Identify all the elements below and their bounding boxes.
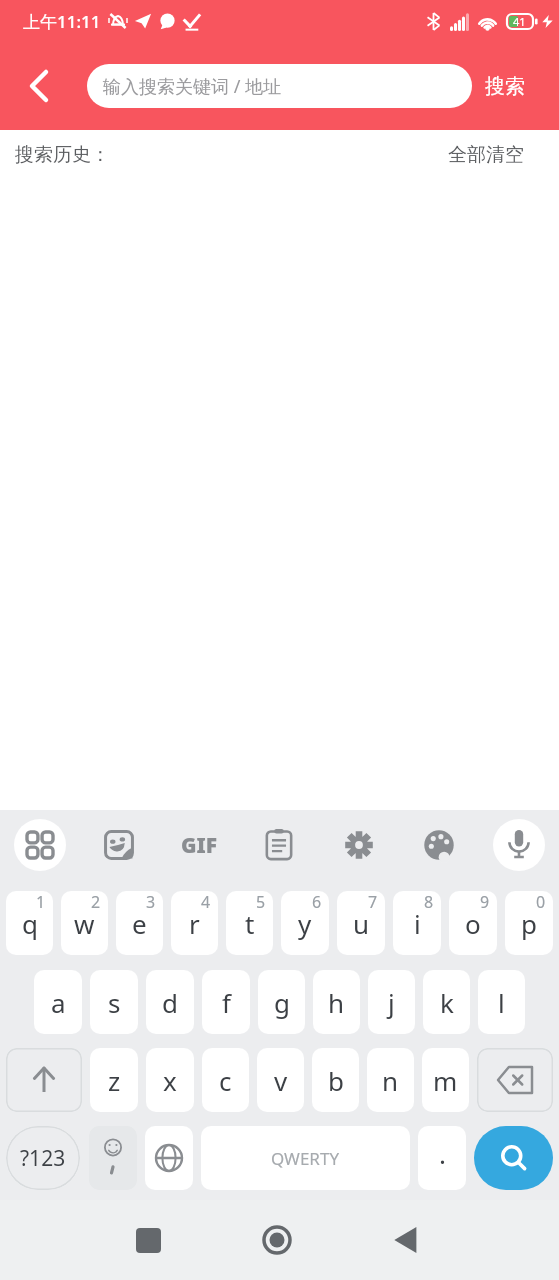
button[interactable]: [386, 1220, 426, 1260]
staticText: w: [74, 906, 95, 941]
button[interactable]: k: [423, 970, 470, 1034]
staticText: QWERTY: [271, 1147, 340, 1170]
button[interactable]: [89, 1126, 137, 1190]
button[interactable]: d: [146, 970, 194, 1034]
staticText: k: [440, 985, 454, 1020]
staticText: 搜索: [485, 74, 525, 99]
staticText: 1: [36, 891, 46, 913]
staticText: .: [439, 1136, 446, 1171]
button[interactable]: t: [226, 891, 273, 955]
button[interactable]: [6, 1048, 82, 1112]
staticText: 8: [424, 891, 434, 913]
staticText: g: [274, 985, 290, 1020]
button[interactable]: y: [281, 891, 329, 955]
button[interactable]: [413, 819, 465, 871]
staticText: h: [328, 985, 345, 1020]
button[interactable]: [16, 64, 60, 108]
staticText: z: [108, 1063, 121, 1098]
button[interactable]: [145, 1126, 193, 1190]
staticText: GIF: [181, 831, 218, 860]
staticText: 4: [201, 891, 211, 913]
button[interactable]: c: [202, 1048, 249, 1112]
button[interactable]: a: [34, 970, 82, 1034]
button[interactable]: [14, 819, 66, 871]
button[interactable]: s: [90, 970, 138, 1034]
button[interactable]: q: [6, 891, 53, 955]
button[interactable]: e: [116, 891, 163, 955]
staticText: ?123: [20, 1144, 66, 1173]
button[interactable]: u: [337, 891, 385, 955]
button[interactable]: o: [449, 891, 497, 955]
staticText: 上午11:11: [23, 10, 101, 33]
staticText: c: [219, 1063, 232, 1098]
staticText: 全部清空: [448, 143, 524, 167]
button[interactable]: m: [422, 1048, 469, 1112]
staticText: n: [382, 1063, 399, 1098]
button[interactable]: [253, 819, 305, 871]
button[interactable]: x: [146, 1048, 194, 1112]
button[interactable]: f: [202, 970, 250, 1034]
button[interactable]: [93, 819, 145, 871]
staticText: 41: [513, 14, 526, 29]
button[interactable]: 搜索: [485, 74, 525, 99]
button[interactable]: z: [90, 1048, 138, 1112]
staticText: v: [274, 1063, 288, 1098]
button[interactable]: [333, 819, 385, 871]
staticText: i: [414, 906, 421, 941]
staticText: q: [22, 906, 38, 941]
staticText: m: [433, 1063, 458, 1098]
staticText: 0: [536, 891, 546, 913]
staticText: u: [353, 906, 370, 941]
button[interactable]: h: [313, 970, 360, 1034]
button[interactable]: v: [257, 1048, 304, 1112]
staticText: e: [132, 906, 147, 941]
button[interactable]: b: [312, 1048, 359, 1112]
staticText: y: [298, 906, 312, 941]
button[interactable]: [128, 1220, 168, 1260]
staticText: 3: [146, 891, 156, 913]
button[interactable]: [474, 1126, 553, 1190]
staticText: p: [521, 906, 537, 941]
staticText: f: [222, 985, 231, 1020]
button[interactable]: n: [367, 1048, 414, 1112]
button[interactable]: w: [61, 891, 108, 955]
button[interactable]: i: [393, 891, 441, 955]
staticText: 2: [91, 891, 101, 913]
staticText: r: [189, 906, 200, 941]
button[interactable]: 输入搜索关键词 / 地址: [87, 64, 472, 108]
staticText: o: [465, 906, 481, 941]
button[interactable]: [257, 1220, 297, 1260]
button[interactable]: [477, 1048, 553, 1112]
staticText: a: [51, 985, 66, 1020]
staticText: 6: [312, 891, 322, 913]
staticText: s: [108, 985, 121, 1020]
staticText: 9: [480, 891, 490, 913]
staticText: j: [388, 985, 395, 1020]
button[interactable]: QWERTY: [201, 1126, 410, 1190]
staticText: b: [328, 1063, 344, 1098]
button[interactable]: l: [478, 970, 525, 1034]
staticText: 输入搜索关键词 / 地址: [103, 74, 282, 99]
button[interactable]: [493, 819, 545, 871]
staticText: t: [245, 906, 255, 941]
button[interactable]: ?123: [6, 1126, 80, 1190]
button[interactable]: GIF: [173, 819, 225, 871]
button[interactable]: 全部清空: [448, 143, 524, 167]
staticText: 7: [368, 891, 378, 913]
staticText: d: [162, 985, 178, 1020]
staticText: 搜索历史：: [15, 143, 110, 167]
staticText: x: [163, 1063, 177, 1098]
button[interactable]: p: [505, 891, 553, 955]
staticText: 5: [256, 891, 266, 913]
button[interactable]: g: [258, 970, 305, 1034]
button[interactable]: r: [171, 891, 218, 955]
button[interactable]: j: [368, 970, 415, 1034]
button[interactable]: .: [418, 1126, 466, 1190]
staticText: l: [498, 985, 505, 1020]
